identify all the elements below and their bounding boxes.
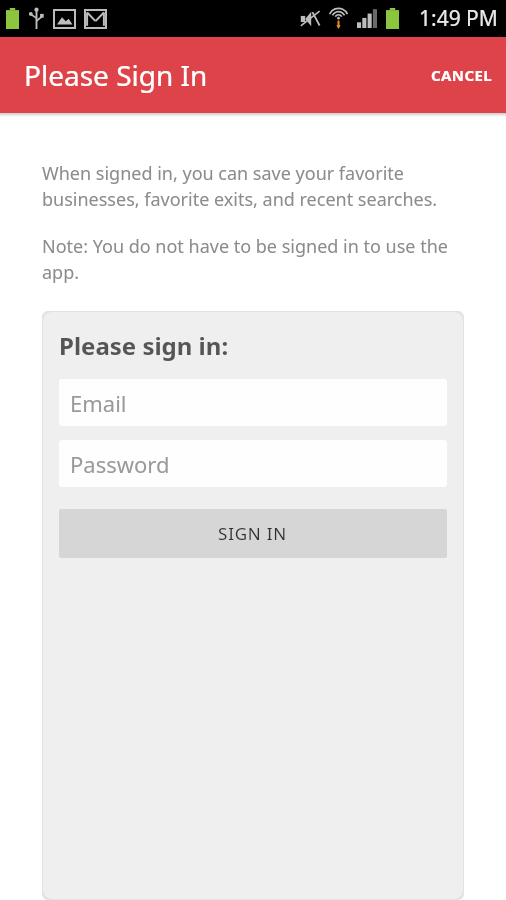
staticText: Please sign in: [59,329,229,362]
staticText: SIGN IN [218,522,288,545]
staticText: Password [70,449,170,479]
button[interactable]: Email [59,379,447,426]
button[interactable]: SIGN IN [59,509,447,558]
button[interactable]: Password [59,440,447,487]
button[interactable]: CANCEL [418,47,506,103]
staticText: Note: You do not have to be signed in to… [42,234,464,285]
staticText: CANCEL [431,65,493,85]
staticText: 1:49 PM [419,4,498,33]
staticText: Please Sign In [24,56,208,94]
staticText: Email [70,388,127,418]
staticText: When signed in, you can save your favori… [42,161,464,212]
